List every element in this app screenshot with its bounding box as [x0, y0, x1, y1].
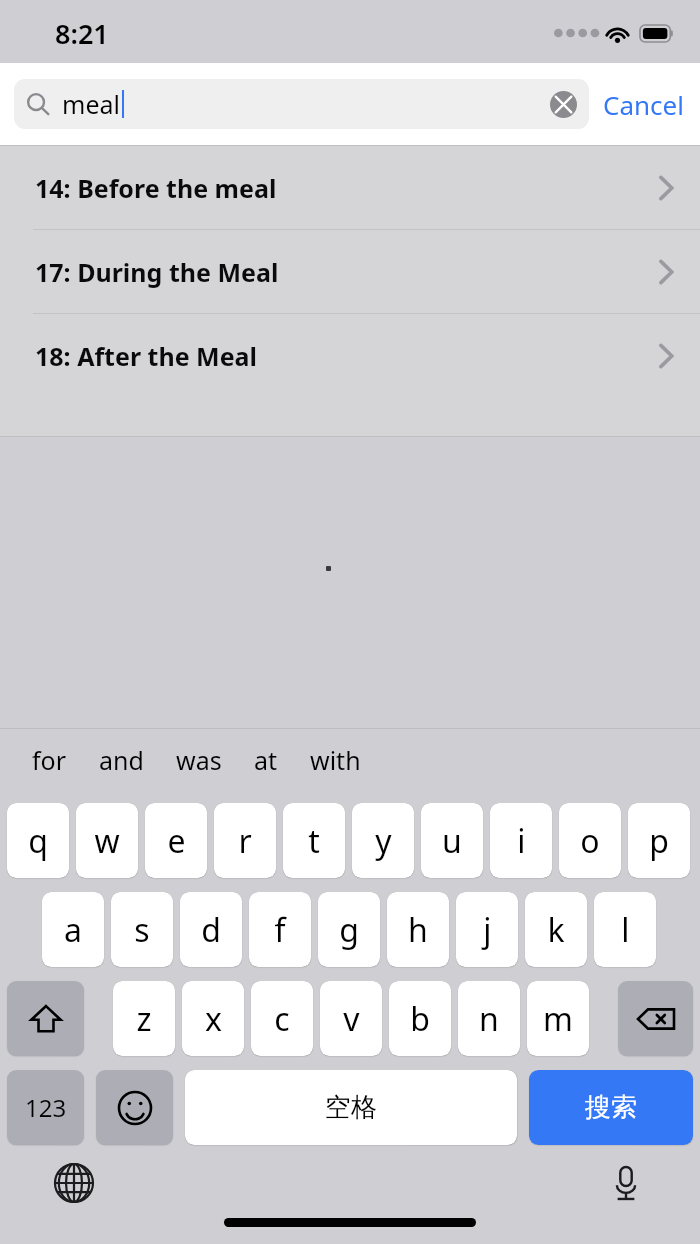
- button[interactable]: p: [628, 803, 690, 878]
- button[interactable]: x: [182, 981, 244, 1056]
- button[interactable]: a: [42, 892, 104, 967]
- staticText: 搜索: [585, 1091, 637, 1124]
- button[interactable]: z: [113, 981, 175, 1056]
- staticText: e: [167, 819, 186, 863]
- staticText: z: [136, 997, 152, 1041]
- staticText: and: [99, 743, 144, 777]
- button[interactable]: 14: Before the meal: [0, 146, 700, 229]
- staticText: w: [94, 819, 120, 863]
- staticText: u: [442, 819, 462, 863]
- button[interactable]: g: [318, 892, 380, 967]
- button[interactable]: j: [456, 892, 518, 967]
- button[interactable]: Shift: [7, 981, 84, 1056]
- button[interactable]: t: [283, 803, 345, 878]
- staticText: 空格: [325, 1091, 377, 1124]
- staticText: m: [543, 997, 573, 1041]
- staticText: meal: [62, 87, 120, 121]
- staticText: x: [205, 997, 222, 1041]
- staticText: l: [621, 908, 630, 952]
- staticText: d: [201, 908, 221, 952]
- staticText: t: [308, 819, 320, 863]
- button[interactable]: r: [214, 803, 276, 878]
- staticText: s: [134, 908, 150, 952]
- button[interactable]: 空格: [185, 1070, 517, 1145]
- button[interactable]: Dictate: [602, 1159, 650, 1207]
- button[interactable]: e: [145, 803, 207, 878]
- staticText: q: [28, 819, 48, 863]
- button[interactable]: l: [594, 892, 656, 967]
- button[interactable]: 搜索: [529, 1070, 693, 1145]
- staticText: 18: After the Meal: [35, 339, 258, 373]
- button[interactable]: Emoji: [96, 1070, 173, 1145]
- button[interactable]: b: [389, 981, 451, 1056]
- staticText: 123: [25, 1091, 67, 1124]
- button[interactable]: for: [16, 737, 83, 783]
- button[interactable]: meal: [14, 79, 589, 129]
- button[interactable]: c: [251, 981, 313, 1056]
- button[interactable]: with: [294, 737, 377, 783]
- staticText: c: [274, 997, 290, 1041]
- staticText: r: [238, 819, 252, 863]
- staticText: with: [310, 743, 361, 777]
- button[interactable]: y: [352, 803, 414, 878]
- button[interactable]: h: [387, 892, 449, 967]
- staticText: for: [32, 743, 67, 777]
- staticText: h: [408, 908, 428, 952]
- button[interactable]: 123: [7, 1070, 84, 1145]
- staticText: 17: During the Meal: [35, 255, 279, 289]
- button[interactable]: and: [83, 737, 160, 783]
- staticText: v: [343, 997, 360, 1041]
- staticText: p: [649, 819, 669, 863]
- button[interactable]: s: [111, 892, 173, 967]
- button[interactable]: o: [559, 803, 621, 878]
- staticText: b: [410, 997, 430, 1041]
- button[interactable]: v: [320, 981, 382, 1056]
- staticText: f: [274, 908, 286, 952]
- staticText: Cancel: [603, 87, 684, 122]
- button[interactable]: Change keyboard language: [50, 1159, 98, 1207]
- button[interactable]: was: [160, 737, 238, 783]
- button[interactable]: i: [490, 803, 552, 878]
- button[interactable]: at: [238, 737, 294, 783]
- button[interactable]: w: [76, 803, 138, 878]
- staticText: at: [254, 743, 278, 777]
- button[interactable]: q: [7, 803, 69, 878]
- button[interactable]: 17: During the Meal: [0, 230, 700, 313]
- button[interactable]: Backspace: [618, 981, 693, 1056]
- button[interactable]: n: [458, 981, 520, 1056]
- button[interactable]: Clear text: [550, 91, 577, 118]
- button[interactable]: 18: After the Meal: [0, 314, 700, 397]
- button[interactable]: u: [421, 803, 483, 878]
- staticText: k: [547, 908, 565, 952]
- staticText: was: [176, 743, 222, 777]
- button[interactable]: d: [180, 892, 242, 967]
- staticText: y: [375, 819, 392, 863]
- button[interactable]: f: [249, 892, 311, 967]
- staticText: o: [580, 819, 600, 863]
- staticText: a: [64, 908, 82, 952]
- staticText: j: [483, 908, 492, 952]
- staticText: i: [517, 819, 526, 863]
- button[interactable]: Cancel: [589, 79, 684, 130]
- button[interactable]: k: [525, 892, 587, 967]
- staticText: 8:21: [55, 15, 109, 52]
- staticText: n: [479, 997, 499, 1041]
- button[interactable]: m: [527, 981, 589, 1056]
- staticText: g: [339, 908, 359, 952]
- staticText: 14: Before the meal: [35, 171, 277, 205]
